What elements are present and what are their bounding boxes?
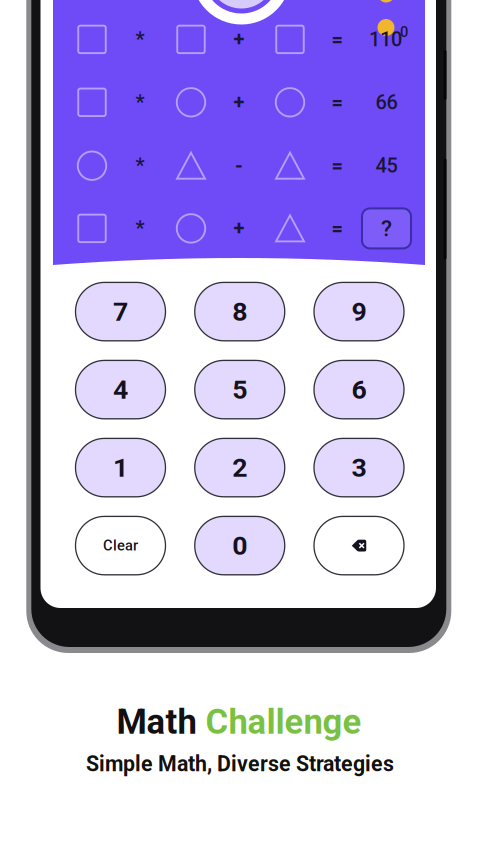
staticText: = [331, 28, 342, 51]
staticText: Math [116, 702, 205, 742]
staticText: * [135, 28, 144, 51]
staticText: Clear [103, 537, 138, 554]
button[interactable]: Clear [75, 516, 165, 575]
button[interactable]: 6 [314, 360, 404, 419]
staticText: 1 [113, 452, 128, 483]
staticText: + [233, 28, 244, 51]
staticText: * [135, 154, 144, 177]
button[interactable]: 0 [195, 516, 285, 575]
button[interactable]: 5 [195, 360, 285, 419]
staticText: 9 [351, 296, 366, 327]
staticText: 6 [351, 374, 366, 405]
staticText: 0 [400, 23, 408, 41]
staticText: - [235, 154, 243, 177]
staticText: 45 [375, 154, 397, 177]
staticText: Challenge [205, 702, 361, 742]
staticText: 8 [232, 296, 247, 327]
button[interactable]: ? [362, 208, 411, 248]
button[interactable]: 7 [75, 282, 165, 341]
staticText: * [135, 217, 144, 240]
staticText: = [331, 91, 342, 114]
button[interactable]: 4 [75, 360, 165, 419]
staticText: = [331, 154, 342, 177]
button[interactable]: 3 [314, 438, 404, 497]
staticText: 0 [232, 530, 247, 561]
staticText: 110 [369, 28, 402, 51]
staticText: + [233, 91, 244, 114]
staticText: ? [381, 215, 392, 242]
button[interactable]: Delete [314, 516, 404, 575]
staticText: 4 [113, 374, 128, 405]
staticText: Simple Math, Diverse Strategies [86, 751, 394, 776]
staticText: 5 [232, 374, 247, 405]
staticText: 66 [375, 91, 397, 114]
button[interactable]: 9 [314, 282, 404, 341]
button[interactable]: 2 [195, 438, 285, 497]
button[interactable]: 8 [195, 282, 285, 341]
staticText: + [233, 217, 244, 240]
staticText: * [135, 91, 144, 114]
staticText: 7 [113, 296, 128, 327]
staticText: 2 [232, 452, 247, 483]
staticText: 3 [351, 452, 366, 483]
staticText: = [331, 217, 342, 240]
button[interactable]: 1 [75, 438, 165, 497]
